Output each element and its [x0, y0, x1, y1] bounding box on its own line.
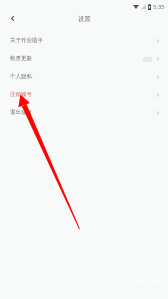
staticText: 5:35	[153, 3, 165, 11]
button[interactable]: 个人隐私	[0, 67, 168, 85]
button[interactable]: 关于作业助手	[0, 31, 168, 49]
staticText: 设置	[78, 15, 91, 23]
staticText: 注销账号	[10, 91, 32, 98]
button[interactable]: 检查更新	[0, 49, 168, 67]
staticText: 个人隐私	[10, 73, 32, 80]
button[interactable]: 注销账号	[0, 85, 168, 103]
staticText: 关于作业助手	[10, 37, 43, 44]
button[interactable]: Back	[6, 12, 19, 25]
button[interactable]: 退出登录	[0, 103, 168, 121]
staticText: 退出登录	[10, 109, 32, 116]
staticText: 检查更新	[10, 55, 32, 62]
